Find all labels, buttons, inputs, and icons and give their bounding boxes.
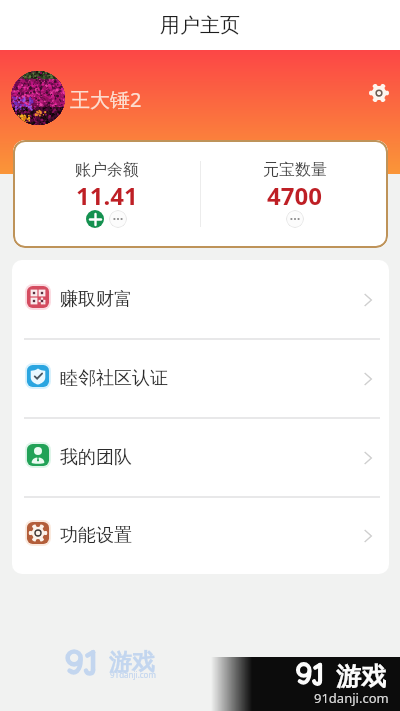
staticText: 账户余额 [75,160,139,180]
staticText: 赚取财富 [60,288,132,311]
button[interactable]: 账户余额 [13,140,200,248]
staticText: 睦邻社区认证 [60,367,168,390]
button[interactable]: 睦邻社区认证 [12,339,389,418]
staticText: 91danji.com [110,669,156,680]
staticText: 王大锤2 [70,86,142,113]
staticText: 功能设置 [60,524,132,547]
button[interactable]: Profile picture [11,71,65,125]
staticText: 游戏 [109,648,155,677]
button[interactable]: 元宝数量 [201,140,388,248]
button[interactable]: More [109,210,127,228]
staticText: 4700 [267,179,322,212]
button[interactable]: Add [86,210,104,228]
button[interactable]: 赚取财富 [12,260,389,339]
staticText: 用户主页 [160,13,240,38]
button[interactable]: 我的团队 [12,418,389,497]
staticText: 11.41 [76,179,138,212]
staticText: 游戏 [336,661,386,692]
staticText: 元宝数量 [263,160,327,180]
button[interactable]: Settings [364,78,393,107]
staticText: 我的团队 [60,446,132,469]
button[interactable]: 功能设置 [12,497,389,574]
button[interactable]: More [286,210,304,228]
staticText: 91danji.com [314,689,389,707]
